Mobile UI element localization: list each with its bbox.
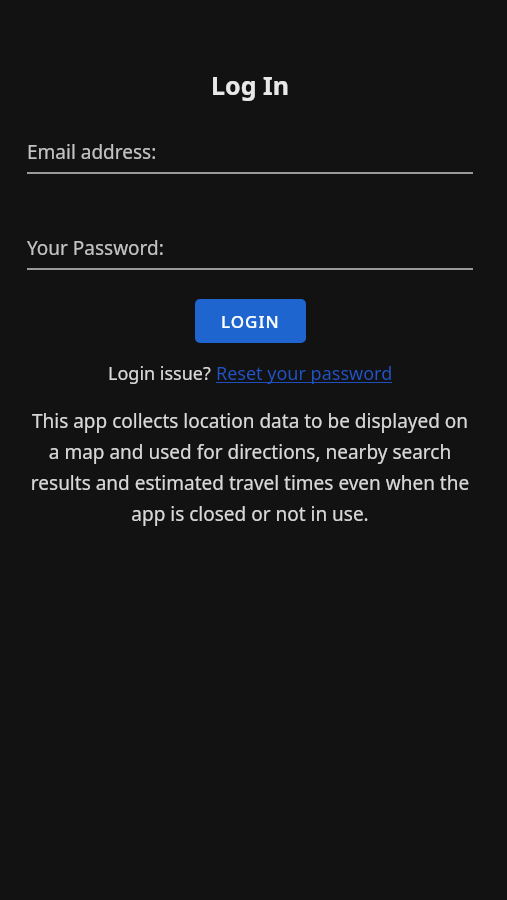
button[interactable]: LOGIN xyxy=(195,299,306,343)
button[interactable]: Reset your password xyxy=(216,361,393,386)
staticText: Log In xyxy=(211,68,289,102)
button[interactable]: Email address: xyxy=(27,139,473,174)
button[interactable]: Your Password: xyxy=(27,235,473,270)
staticText: Your Password: xyxy=(27,235,164,261)
staticText: Email address: xyxy=(27,139,157,165)
staticText: LOGIN xyxy=(221,310,280,333)
staticText: Reset your password xyxy=(216,361,393,386)
staticText: This app collects location data to be di… xyxy=(27,408,473,527)
staticText: Login issue? xyxy=(108,361,216,386)
